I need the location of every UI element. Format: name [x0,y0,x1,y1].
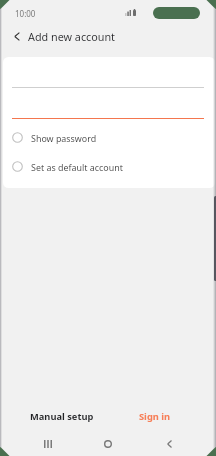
button[interactable]: Back [149,431,189,456]
staticText: Add new account [28,29,116,44]
button[interactable]: Manual setup [22,406,102,426]
staticText: Set as default account [31,161,123,173]
staticText: 10:00 [15,8,36,19]
button[interactable]: Set as default account [3,152,215,181]
staticText: Show password [31,132,97,144]
button[interactable]: Home [88,431,128,456]
staticText: Manual setup [30,410,94,423]
button[interactable]: Show password [3,123,215,152]
button[interactable]: Navigate up [6,24,28,48]
button[interactable]: Sign in [135,406,175,426]
button[interactable]: Recent apps [28,431,68,456]
staticText: Sign in [139,410,171,423]
